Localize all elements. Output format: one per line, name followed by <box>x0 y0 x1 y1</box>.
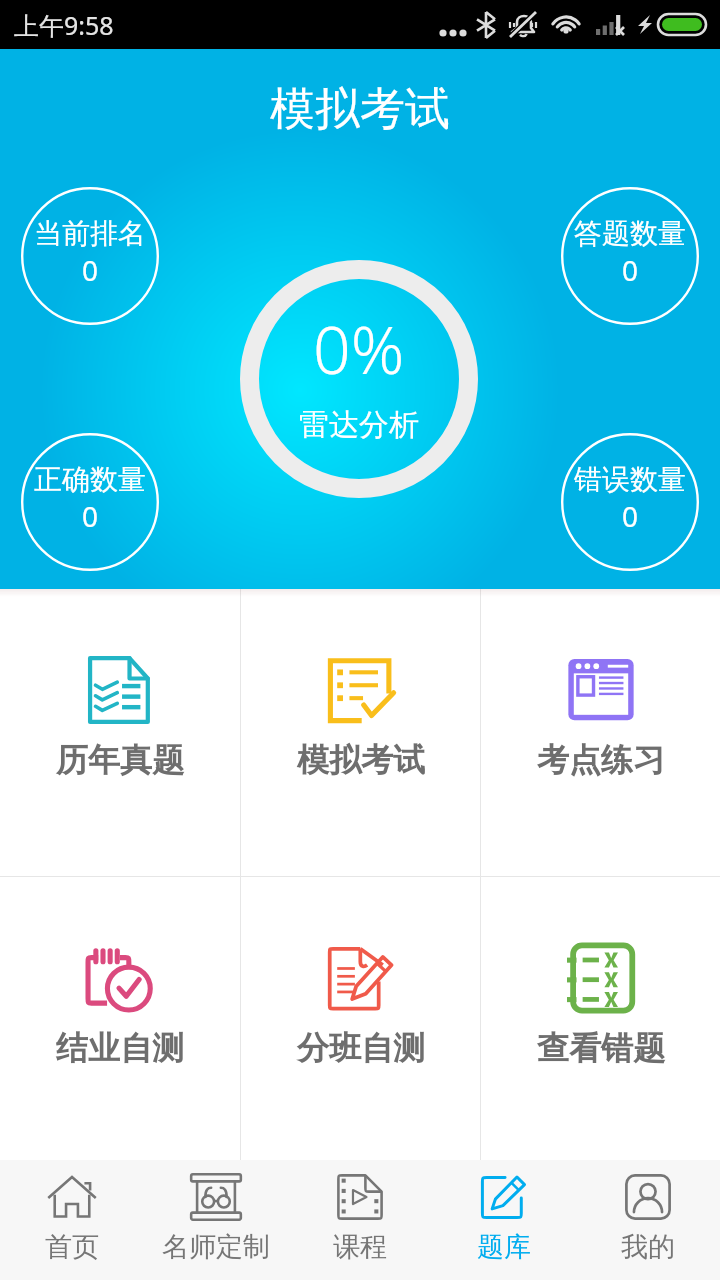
button[interactable]: 当前排名 <box>21 187 159 325</box>
button[interactable]: 历年真题 <box>0 589 240 876</box>
button[interactable]: 分班自测 <box>241 877 480 1160</box>
staticText: 0 <box>82 251 99 289</box>
button[interactable]: 查看错题 <box>481 877 720 1160</box>
staticText: 雷达分析 <box>299 406 419 444</box>
button[interactable]: 0% <box>240 260 478 498</box>
staticText: 题库 <box>477 1230 531 1264</box>
staticText: 课程 <box>333 1230 387 1264</box>
button[interactable]: 模拟考试 <box>241 589 480 876</box>
staticText: 分班自测 <box>297 1028 425 1068</box>
staticText: 0% <box>313 303 405 393</box>
staticText: 模拟考试 <box>297 740 425 780</box>
staticText: 历年真题 <box>56 740 184 780</box>
button[interactable]: 首页 <box>0 1160 144 1280</box>
staticText: 模拟考试 <box>270 81 450 138</box>
staticText: 首页 <box>45 1230 99 1264</box>
staticText: 正确数量 <box>34 462 146 497</box>
staticText: 我的 <box>621 1230 675 1264</box>
staticText: 0 <box>622 497 639 535</box>
button[interactable]: 结业自测 <box>0 877 240 1160</box>
staticText: 上午9:58 <box>14 8 114 42</box>
staticText: 考点练习 <box>537 740 665 780</box>
button[interactable]: 正确数量 <box>21 433 159 571</box>
staticText: 查看错题 <box>537 1028 665 1068</box>
button[interactable]: 课程 <box>288 1160 432 1280</box>
staticText: 当前排名 <box>34 216 146 251</box>
button[interactable]: 名师定制 <box>144 1160 288 1280</box>
staticText: 答题数量 <box>574 216 686 251</box>
button[interactable]: 题库 <box>432 1160 576 1280</box>
button[interactable]: 答题数量 <box>561 187 699 325</box>
staticText: 错误数量 <box>574 462 686 497</box>
button[interactable]: 错误数量 <box>561 433 699 571</box>
button[interactable]: 我的 <box>576 1160 720 1280</box>
staticText: 名师定制 <box>162 1230 270 1264</box>
staticText: 结业自测 <box>56 1028 184 1068</box>
staticText: 0 <box>82 497 99 535</box>
button[interactable]: 考点练习 <box>481 589 720 876</box>
staticText: 0 <box>622 251 639 289</box>
